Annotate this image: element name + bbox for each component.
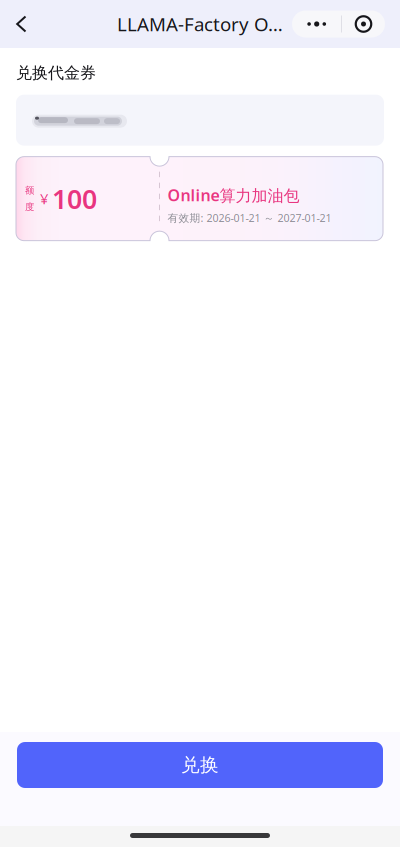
button[interactable] [16,95,384,146]
staticText: 额 [25,185,34,196]
staticText: 度 [25,201,34,213]
staticText: 兑换 [181,753,219,776]
button[interactable]: 额 [16,160,383,244]
staticText: 兑换代金券 [16,63,96,83]
staticText: 有效期: 2026-01-21 ～ 2027-01-21 [167,211,331,225]
button[interactable]: More options [292,10,341,37]
button[interactable]: 兑换 [17,742,383,788]
button[interactable]: Back [0,0,43,48]
staticText: Online算力加油包 [167,184,299,206]
staticText: 100 [52,181,97,216]
staticText: ¥ [40,189,48,208]
staticText: LLAMA-Factory O… [117,12,283,36]
button[interactable]: Close mini program [342,10,385,37]
